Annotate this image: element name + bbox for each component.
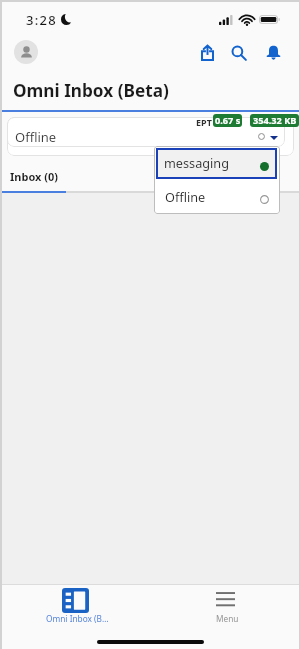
staticText: messaging: [164, 154, 230, 171]
button[interactable]: Offline: [156, 181, 277, 212]
staticText: Offline: [15, 128, 57, 146]
button[interactable]: Share: [196, 41, 219, 64]
staticText: Menu: [216, 613, 239, 624]
button[interactable]: Offline: [7, 117, 294, 156]
staticText: 0.67 s: [215, 114, 241, 127]
staticText: Offline: [165, 188, 206, 205]
staticText: EPT: [196, 116, 212, 128]
staticText: Omni Inbox (B…: [46, 613, 109, 624]
button[interactable]: Menu: [151, 585, 299, 629]
button[interactable]: Search: [227, 41, 250, 64]
staticText: 354.32 KB: [253, 114, 297, 127]
button[interactable]: Omni Inbox (B…: [2, 585, 151, 629]
button[interactable]: Account: [14, 40, 38, 64]
button[interactable]: Inbox (0): [2, 160, 67, 193]
staticText: Inbox (0): [10, 169, 59, 184]
staticText: Omni Inbox (Beta): [13, 79, 169, 102]
staticText: 3:28: [26, 11, 58, 29]
button[interactable]: Notifications: [262, 41, 285, 64]
button[interactable]: messaging: [156, 148, 277, 179]
